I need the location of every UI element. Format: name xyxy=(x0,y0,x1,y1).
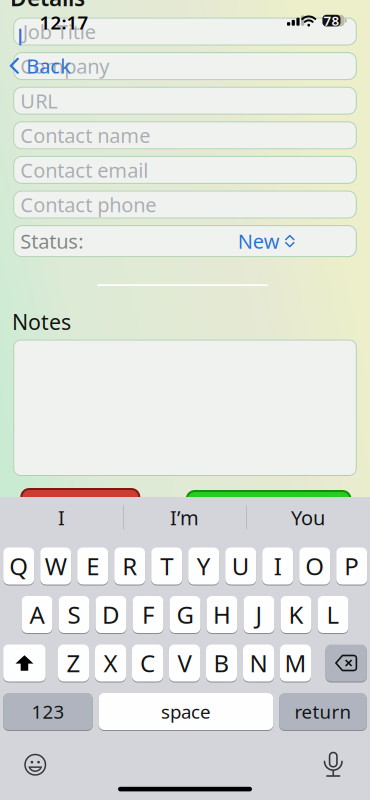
textField[interactable] xyxy=(20,87,357,114)
staticText: J xyxy=(255,599,262,630)
button[interactable]: return xyxy=(279,692,367,730)
button[interactable]: R xyxy=(114,547,145,585)
staticText: L xyxy=(326,599,339,630)
button[interactable]: T xyxy=(151,547,182,585)
staticText: New xyxy=(238,228,280,254)
staticText: Back xyxy=(26,52,71,79)
button[interactable]: I’m xyxy=(123,497,246,538)
button[interactable]: Emoji xyxy=(25,754,45,775)
staticText xyxy=(20,122,25,149)
staticText: U xyxy=(232,550,250,582)
staticText: Details xyxy=(10,0,85,13)
button[interactable]: 123 xyxy=(3,692,93,730)
button[interactable]: You xyxy=(246,497,370,538)
staticText: You xyxy=(291,504,325,531)
button[interactable]: L xyxy=(317,595,348,633)
staticText: Job Title xyxy=(23,18,96,45)
staticText: Company xyxy=(20,53,109,79)
button[interactable]: D xyxy=(95,595,126,633)
staticText: Status: xyxy=(20,228,83,254)
button[interactable]: Shift xyxy=(3,644,46,682)
staticText: S xyxy=(67,599,80,630)
button[interactable]: Save xyxy=(187,491,350,507)
staticText: 123 xyxy=(31,699,64,724)
textField[interactable] xyxy=(20,122,357,149)
button[interactable]: F xyxy=(132,595,163,633)
button[interactable]: Delete xyxy=(21,489,139,505)
button[interactable]: I xyxy=(0,497,123,538)
staticText xyxy=(20,157,25,183)
button[interactable]: U xyxy=(225,547,256,585)
staticText: H xyxy=(213,599,231,630)
staticText: I xyxy=(58,504,65,531)
staticText: return xyxy=(294,699,351,724)
button[interactable]: Q xyxy=(3,547,34,585)
staticText: M xyxy=(284,647,306,679)
staticText: Contact phone xyxy=(20,191,156,218)
button[interactable]: Back xyxy=(11,52,71,79)
staticText: F xyxy=(142,599,154,630)
staticText: Z xyxy=(66,647,80,679)
staticText: 78 xyxy=(323,12,339,29)
textField[interactable] xyxy=(20,191,357,218)
button[interactable]: W xyxy=(40,547,71,585)
staticText: G xyxy=(176,599,193,630)
button[interactable]: K xyxy=(280,595,311,633)
staticText: V xyxy=(177,647,191,679)
button[interactable]: Z xyxy=(58,644,89,682)
button[interactable]: Status, New xyxy=(13,225,357,257)
button[interactable]: A xyxy=(21,595,52,633)
staticText: I’m xyxy=(170,504,199,531)
staticText: O xyxy=(305,550,324,582)
button[interactable]: O xyxy=(299,547,330,585)
button[interactable]: P xyxy=(336,547,367,585)
staticText: URL xyxy=(20,87,57,114)
button[interactable]: J xyxy=(243,595,274,633)
button[interactable]: H xyxy=(206,595,237,633)
button[interactable]: Delete xyxy=(325,644,367,682)
staticText: I xyxy=(274,550,282,582)
button[interactable]: N xyxy=(243,644,274,682)
staticText: K xyxy=(288,599,303,630)
button[interactable]: Dictate xyxy=(324,752,342,777)
staticText: Contact name xyxy=(20,122,150,149)
textField[interactable] xyxy=(20,18,357,45)
staticText: A xyxy=(29,599,44,630)
button[interactable]: G xyxy=(169,595,200,633)
button[interactable]: Y xyxy=(188,547,219,585)
button[interactable]: S xyxy=(58,595,89,633)
staticText: R xyxy=(122,550,137,582)
button[interactable]: M xyxy=(280,644,311,682)
staticText xyxy=(20,18,25,45)
staticText: Q xyxy=(9,550,28,582)
staticText: N xyxy=(249,647,267,679)
staticText: D xyxy=(102,599,120,630)
staticText xyxy=(20,191,25,218)
button[interactable]: I xyxy=(262,547,293,585)
button[interactable]: C xyxy=(132,644,163,682)
staticText: E xyxy=(86,550,99,582)
staticText: B xyxy=(213,647,229,679)
staticText: 12:17 xyxy=(39,10,88,35)
staticText: C xyxy=(140,647,155,679)
staticText: P xyxy=(344,550,359,582)
button[interactable]: V xyxy=(169,644,200,682)
button[interactable]: X xyxy=(95,644,126,682)
staticText: X xyxy=(103,647,117,679)
staticText: T xyxy=(160,550,173,582)
button[interactable]: space xyxy=(99,692,273,730)
textField[interactable] xyxy=(20,53,357,79)
staticText: Notes xyxy=(12,307,71,336)
staticText: Contact email xyxy=(20,157,148,183)
textField[interactable] xyxy=(20,157,357,183)
staticText xyxy=(20,87,25,114)
staticText: Y xyxy=(197,550,211,582)
staticText xyxy=(20,53,25,79)
staticText: space xyxy=(161,699,211,724)
button[interactable]: B xyxy=(206,644,237,682)
button[interactable]: E xyxy=(77,547,108,585)
staticText: W xyxy=(45,550,67,582)
